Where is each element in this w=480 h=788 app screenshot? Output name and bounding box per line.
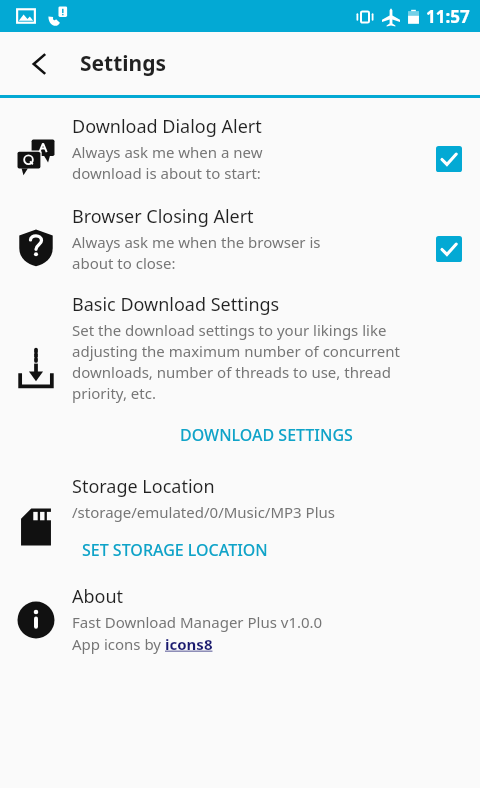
staticText: Always ask me when the browser is about … [72,232,321,274]
staticText: Download Dialog Alert [72,114,262,139]
staticText: Settings [80,49,167,78]
staticText: DOWNLOAD SETTINGS [180,424,353,446]
button[interactable]: Download dialog alert [0,114,480,188]
button[interactable]: Back [18,42,62,86]
staticText: SET STORAGE LOCATION [82,539,268,561]
staticText: Fast Download Manager Plus v1.0.0 [72,612,323,632]
staticText: Browser Closing Alert [72,204,254,229]
other: Download dialog alert [0,114,72,188]
button[interactable]: Browser closing alert [0,204,480,278]
button[interactable]: Toggle [436,146,462,172]
staticText: Storage Location [72,474,215,499]
staticText: Set the download settings to your liking… [72,320,400,404]
button[interactable]: icons8 [165,634,213,654]
button[interactable]: DOWNLOAD SETTINGS [168,418,365,452]
button[interactable]: Toggle [436,236,462,262]
staticText: Basic Download Settings [72,292,280,317]
button[interactable]: SET STORAGE LOCATION [72,534,278,566]
staticText: icons8 [165,634,213,654]
staticText: 11:57 [426,5,470,28]
staticText: /storage/emulated/0/Music/MP3 Plus [72,502,335,522]
staticText: Always ask me when a new download is abo… [72,142,263,184]
staticText: About [72,584,124,609]
staticText: App icons by [72,634,165,654]
other: Browser closing alert [0,204,72,278]
